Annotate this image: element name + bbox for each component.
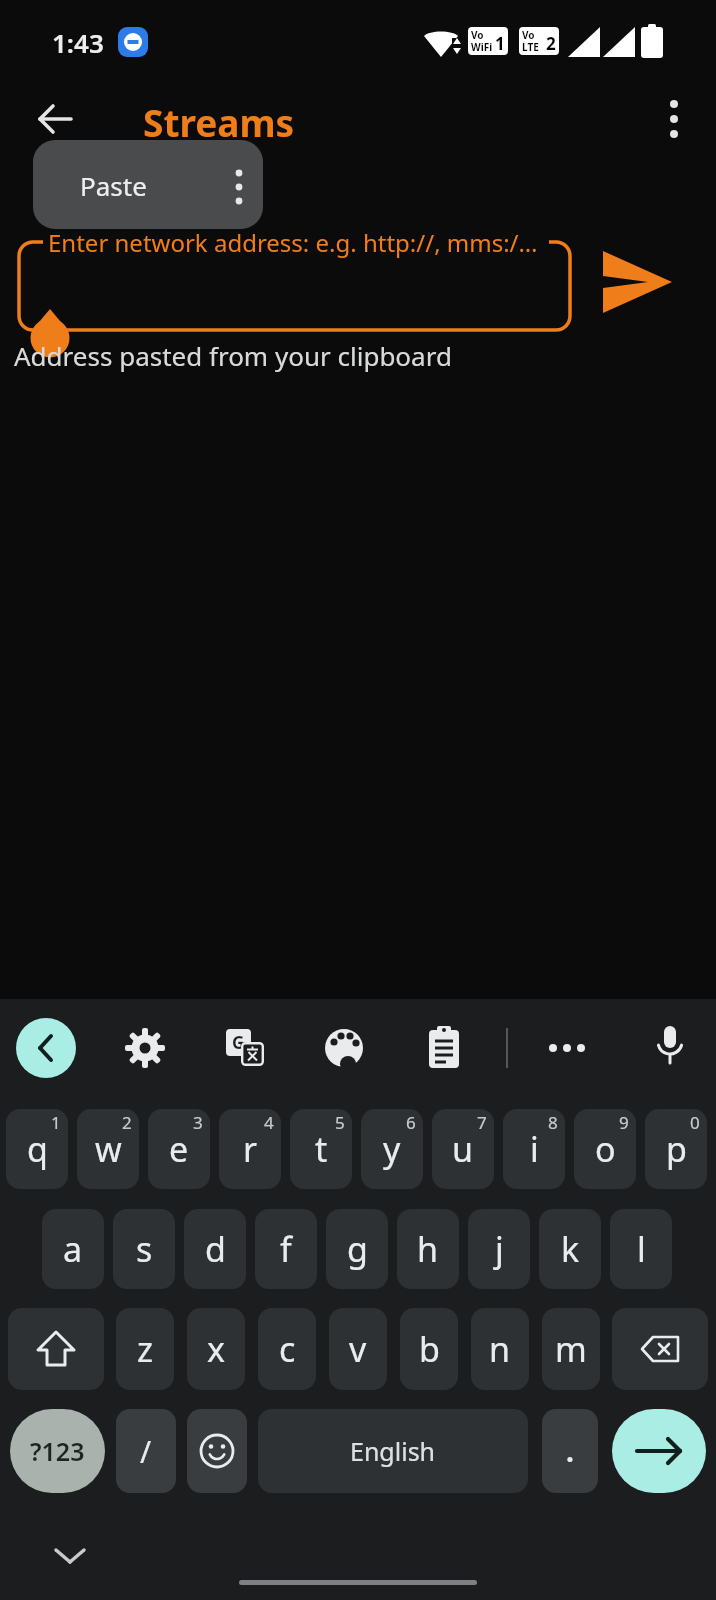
staticText: s xyxy=(136,1226,153,1272)
button[interactable]: v xyxy=(329,1308,387,1390)
button[interactable] xyxy=(612,1308,708,1390)
button[interactable]: English xyxy=(258,1409,528,1493)
button[interactable]: n xyxy=(471,1308,529,1390)
button[interactable]: ?123 xyxy=(10,1409,105,1493)
button[interactable] xyxy=(652,1024,688,1072)
staticText: ?123 xyxy=(30,1434,85,1468)
staticText: English xyxy=(350,1434,436,1468)
staticText: o xyxy=(595,1126,616,1172)
staticText: Address pasted from your clipboard xyxy=(14,338,452,373)
button[interactable] xyxy=(123,1026,167,1070)
button[interactable]: c xyxy=(258,1308,316,1390)
staticText: c xyxy=(279,1326,296,1372)
button[interactable]: u xyxy=(432,1109,494,1189)
button[interactable] xyxy=(8,1308,104,1390)
staticText: j xyxy=(495,1226,504,1272)
staticText: 1:43 xyxy=(52,25,104,60)
staticText: d xyxy=(205,1226,226,1272)
staticText: Paste xyxy=(80,168,147,203)
staticText: f xyxy=(280,1226,292,1272)
staticText: LTE xyxy=(522,40,539,54)
button[interactable] xyxy=(43,1534,97,1574)
button[interactable]: f xyxy=(255,1209,317,1289)
button[interactable] xyxy=(545,1026,589,1070)
staticText: 3 xyxy=(193,1111,203,1134)
button[interactable]: a xyxy=(42,1209,104,1289)
button[interactable] xyxy=(16,1018,76,1078)
button[interactable] xyxy=(17,240,572,332)
button[interactable]: t xyxy=(290,1109,352,1189)
button[interactable]: l xyxy=(610,1209,672,1289)
button[interactable] xyxy=(187,1409,247,1493)
staticText: G xyxy=(232,1031,245,1054)
staticText: WiFi xyxy=(471,40,493,54)
button[interactable] xyxy=(652,94,696,144)
button[interactable]: k xyxy=(539,1209,601,1289)
staticText: g xyxy=(347,1226,368,1272)
button[interactable]: Paste xyxy=(33,140,263,229)
staticText: r xyxy=(243,1126,258,1172)
button[interactable] xyxy=(612,1409,706,1493)
button[interactable]: d xyxy=(184,1209,246,1289)
staticText: k xyxy=(561,1226,580,1272)
button[interactable] xyxy=(30,94,80,144)
staticText: . xyxy=(566,1432,574,1470)
button[interactable]: . xyxy=(542,1409,598,1493)
staticText: 8 xyxy=(548,1111,558,1134)
button[interactable]: z xyxy=(116,1308,174,1390)
staticText: z xyxy=(137,1326,153,1372)
button[interactable]: o xyxy=(574,1109,636,1189)
staticText: 1 xyxy=(51,1111,61,1134)
staticText: 4 xyxy=(264,1111,274,1134)
staticText: l xyxy=(637,1226,646,1272)
staticText: 5 xyxy=(335,1111,345,1134)
button[interactable] xyxy=(322,1026,366,1070)
staticText: 7 xyxy=(477,1111,487,1134)
staticText: b xyxy=(419,1326,440,1372)
button[interactable]: G xyxy=(226,1029,266,1069)
button[interactable]: r xyxy=(219,1109,281,1189)
button[interactable] xyxy=(426,1026,462,1070)
button[interactable]: / xyxy=(116,1409,176,1493)
button[interactable]: j xyxy=(468,1209,530,1289)
button[interactable]: w xyxy=(77,1109,139,1189)
staticText: 6 xyxy=(406,1111,416,1134)
staticText: Streams xyxy=(143,97,295,147)
staticText: n xyxy=(489,1326,511,1372)
staticText: 2 xyxy=(546,32,556,55)
staticText: 2 xyxy=(122,1111,132,1134)
button[interactable] xyxy=(598,242,676,322)
button[interactable]: q xyxy=(6,1109,68,1189)
staticText: x xyxy=(207,1326,225,1372)
button[interactable]: p xyxy=(645,1109,707,1189)
staticText: i xyxy=(530,1126,539,1172)
staticText: a xyxy=(63,1226,83,1272)
button[interactable]: e xyxy=(148,1109,210,1189)
button[interactable]: x xyxy=(187,1308,245,1390)
staticText: 9 xyxy=(619,1111,629,1134)
staticText: Vo xyxy=(471,28,484,42)
staticText: 0 xyxy=(690,1111,700,1134)
button[interactable]: s xyxy=(113,1209,175,1289)
staticText: Enter network address: e.g. http://, mms… xyxy=(48,226,538,259)
button[interactable]: m xyxy=(542,1308,600,1390)
button[interactable]: y xyxy=(361,1109,423,1189)
staticText: y xyxy=(383,1126,401,1172)
button[interactable]: h xyxy=(397,1209,459,1289)
staticText: 1 xyxy=(495,32,505,55)
staticText: v xyxy=(349,1326,367,1372)
button[interactable]: b xyxy=(400,1308,458,1390)
staticText: m xyxy=(555,1326,587,1372)
button[interactable]: i xyxy=(503,1109,565,1189)
staticText: p xyxy=(666,1126,687,1172)
staticText: Vo xyxy=(522,28,535,42)
button[interactable]: g xyxy=(326,1209,388,1289)
staticText: / xyxy=(140,1431,152,1472)
staticText: h xyxy=(417,1226,439,1272)
staticText: w xyxy=(95,1126,122,1172)
staticText: q xyxy=(27,1126,48,1172)
staticText: t xyxy=(315,1126,328,1172)
staticText: e xyxy=(169,1126,189,1172)
staticText: u xyxy=(452,1126,474,1172)
